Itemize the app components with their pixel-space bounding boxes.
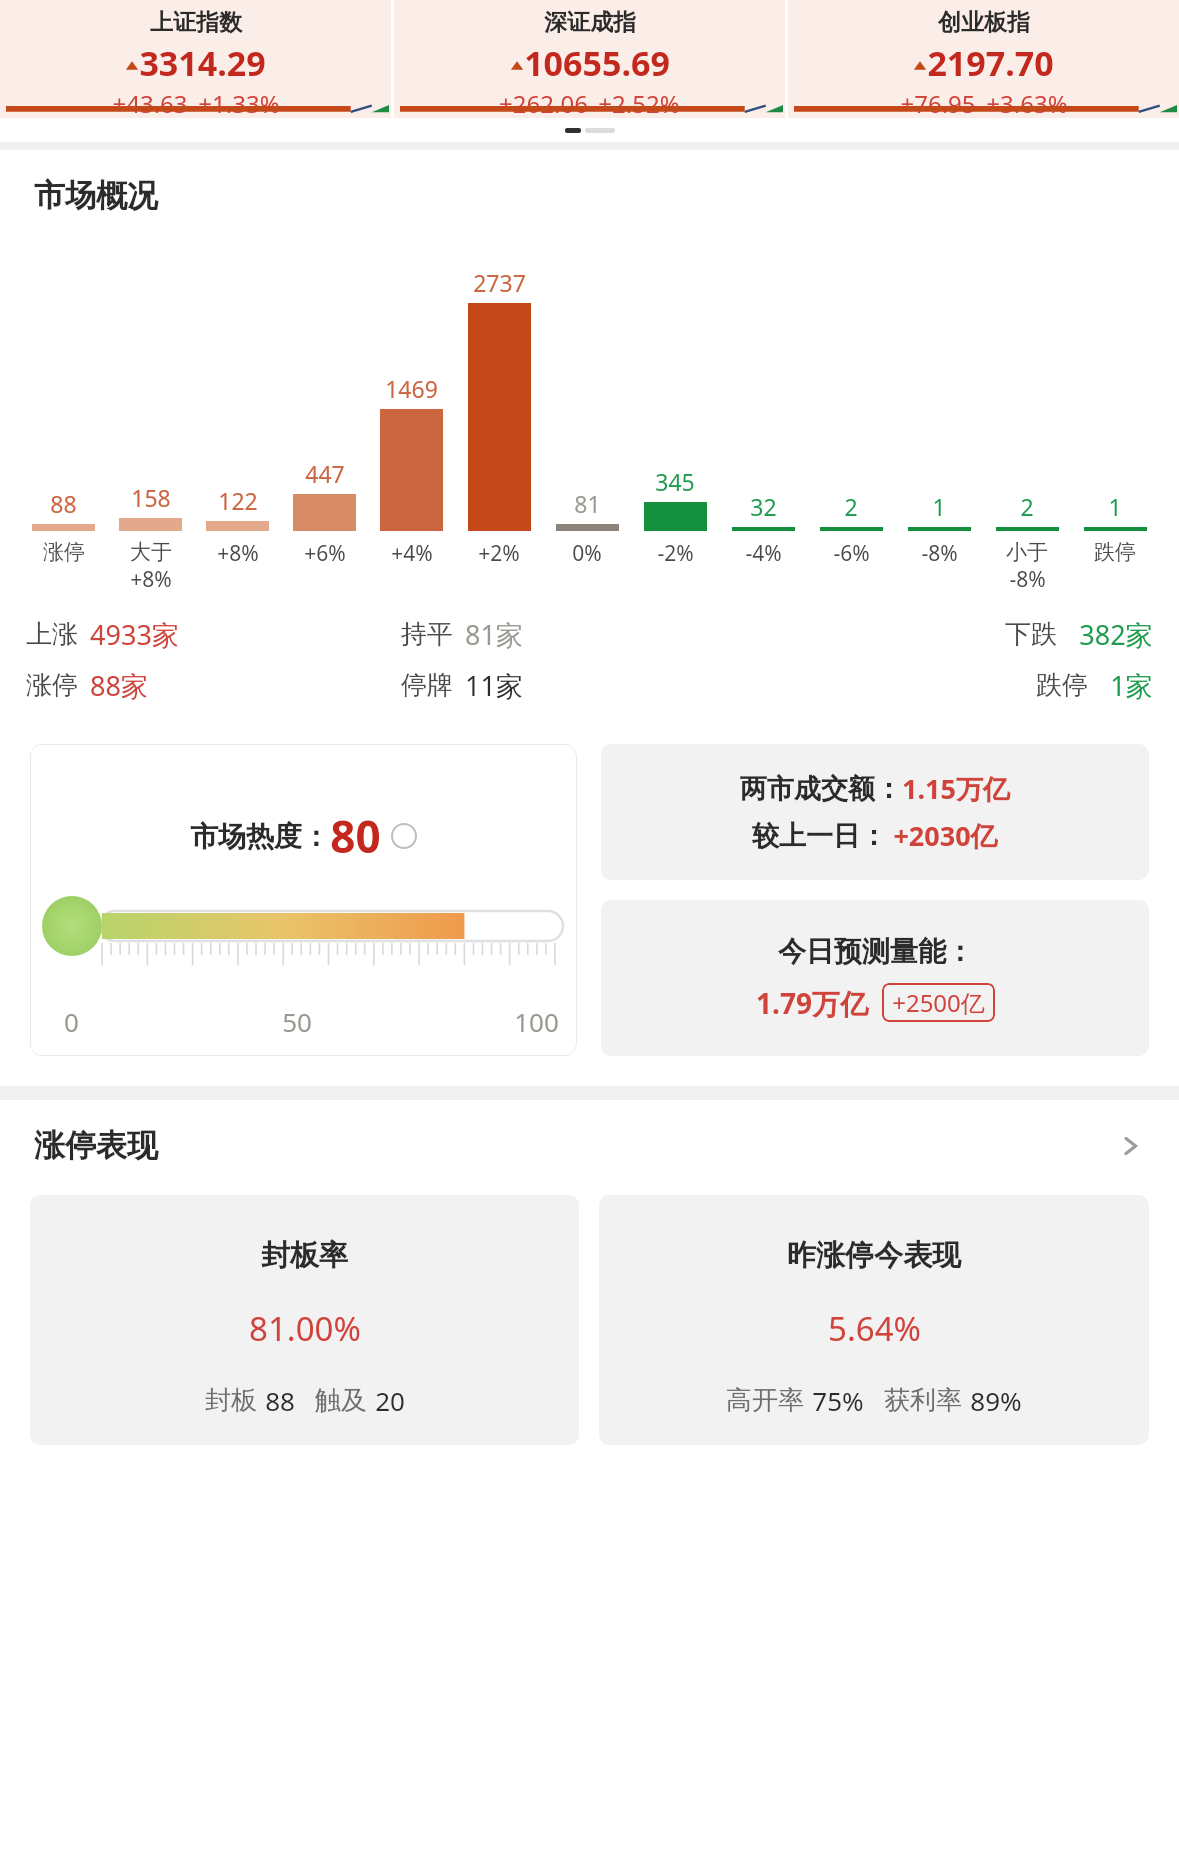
staticText: 今日预测量能： <box>778 934 974 969</box>
staticText: 1.79万亿 <box>756 984 868 1022</box>
staticText: 昨涨停今表现 <box>787 1237 961 1274</box>
button[interactable]: 涨停表现 <box>34 1126 1145 1165</box>
button[interactable]: 市场概况 <box>34 176 1179 215</box>
button[interactable]: 昨涨停今表现 <box>599 1195 1149 1445</box>
staticText: 跌停 <box>1094 539 1136 565</box>
staticText: 获利率 <box>884 1384 962 1417</box>
staticText: 深证成指 <box>544 8 636 37</box>
staticText: 75% <box>812 1383 864 1418</box>
staticText: 3314.29 <box>139 40 266 86</box>
staticText: 2737 <box>473 267 526 298</box>
staticText: 122 <box>218 485 258 516</box>
staticText: +3.63% <box>986 87 1068 118</box>
staticText: +4% <box>391 539 433 568</box>
staticText: 市场热度： <box>190 819 330 854</box>
staticText: +76.95 <box>900 87 976 118</box>
staticText: 大于 <box>130 539 172 565</box>
staticText: +43.63 <box>112 87 188 118</box>
staticText: +2030亿 <box>893 817 998 854</box>
staticText: 81家 <box>465 616 523 653</box>
staticText: +6% <box>304 539 346 568</box>
staticText: 5.64% <box>828 1306 921 1351</box>
staticText: 81 <box>574 488 601 519</box>
staticText: 11家 <box>465 667 523 704</box>
staticText: 两市成交额： <box>740 772 902 806</box>
staticText: 447 <box>305 458 345 489</box>
staticText: 较上一日： <box>752 819 887 853</box>
staticText: 2197.70 <box>927 40 1054 86</box>
staticText: +2500亿 <box>892 986 985 1019</box>
staticText: 0 <box>64 1004 79 1039</box>
button[interactable]: 封板率 <box>30 1195 579 1445</box>
staticText: 下跌 <box>1005 618 1057 651</box>
staticText: 1.15万亿 <box>902 770 1010 807</box>
staticText: 345 <box>655 466 695 497</box>
staticText: 1 <box>1108 491 1122 522</box>
button[interactable]: 市场热度： <box>30 744 577 1056</box>
other: 查看更多涨停表现 <box>1115 1131 1145 1161</box>
staticText: 高开率 <box>726 1384 804 1417</box>
staticText: 4933家 <box>90 616 179 653</box>
staticText: 2 <box>844 491 858 522</box>
staticText: 停牌 <box>401 669 453 702</box>
staticText: 10655.69 <box>524 40 670 86</box>
staticText: +2.52% <box>598 87 680 118</box>
staticText: 88 <box>265 1383 295 1418</box>
staticText: -4% <box>745 539 782 568</box>
button[interactable]: 两市成交额： <box>601 744 1149 880</box>
staticText: 89% <box>970 1383 1022 1418</box>
staticText: 1家 <box>1110 667 1153 704</box>
staticText: -8% <box>921 539 958 568</box>
staticText: 20 <box>375 1383 405 1418</box>
staticText: 1469 <box>385 373 438 404</box>
staticText: 创业板指 <box>938 8 1030 37</box>
staticText: 1 <box>932 491 946 522</box>
staticText: +8% <box>217 539 259 568</box>
staticText: 88家 <box>90 667 148 704</box>
staticText: 158 <box>131 482 171 513</box>
staticText: 上涨 <box>26 618 78 651</box>
button[interactable]: 上证指数 <box>0 0 391 118</box>
staticText: 上证指数 <box>150 8 242 37</box>
staticText: 2 <box>1020 491 1034 522</box>
staticText: -8% <box>1009 565 1046 594</box>
staticText: 涨停 <box>43 539 85 565</box>
staticText: 触及 <box>315 1384 367 1417</box>
button[interactable]: 今日预测量能： <box>601 900 1149 1056</box>
staticText: 跌停 <box>1036 669 1088 702</box>
staticText: 涨停 <box>26 669 78 702</box>
staticText: -6% <box>833 539 870 568</box>
staticText: +2% <box>478 539 520 568</box>
staticText: 市场概况 <box>34 176 158 215</box>
staticText: 封板率 <box>261 1237 348 1274</box>
staticText: 88 <box>50 488 77 519</box>
staticText: 32 <box>750 491 777 522</box>
button[interactable]: 深证成指 <box>394 0 785 118</box>
staticText: 100 <box>514 1004 559 1039</box>
staticText: 0% <box>572 539 602 568</box>
staticText: +1.33% <box>198 87 280 118</box>
staticText: 382家 <box>1079 616 1153 653</box>
staticText: 81.00% <box>249 1306 361 1351</box>
staticText: 小于 <box>1006 539 1048 565</box>
button[interactable]: 创业板指 <box>788 0 1179 118</box>
staticText: -2% <box>657 539 694 568</box>
staticText: 50 <box>282 1004 312 1039</box>
staticText: 封板 <box>205 1384 257 1417</box>
staticText: 80 <box>330 806 381 866</box>
staticText: +8% <box>130 565 172 594</box>
staticText: 持平 <box>401 618 453 651</box>
staticText: 涨停表现 <box>34 1126 158 1165</box>
staticText: +262.06 <box>499 87 588 118</box>
